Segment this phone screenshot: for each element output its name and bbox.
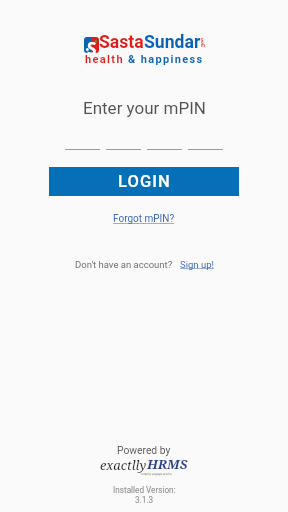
button[interactable]: Sign up! xyxy=(180,259,214,270)
staticText: Powered by xyxy=(117,444,171,456)
button[interactable]: Forgot mPIN? xyxy=(107,211,181,227)
staticText: Forgot mPIN? xyxy=(113,213,175,225)
staticText: Don't have an account? xyxy=(75,259,173,270)
staticText: Sign up! xyxy=(180,259,214,270)
staticText: exactlly xyxy=(100,456,147,473)
staticText: LOGIN xyxy=(118,172,171,191)
staticText: employ engage evolve xyxy=(141,472,172,476)
button[interactable]: LOGIN xyxy=(49,167,239,196)
staticText: HRMS xyxy=(147,455,188,473)
staticText: Sasta xyxy=(99,32,144,53)
staticText: m xyxy=(201,43,205,48)
staticText: o xyxy=(201,40,204,45)
staticText: 3.1.3 xyxy=(135,495,154,505)
staticText: health xyxy=(85,53,128,66)
staticText: c xyxy=(201,37,204,42)
staticText: Enter your mPIN xyxy=(83,98,206,118)
staticText: Installed Version: xyxy=(113,485,176,495)
staticText: Sundar xyxy=(144,32,201,53)
staticText: & happiness xyxy=(128,53,204,66)
staticText: S xyxy=(87,37,97,53)
